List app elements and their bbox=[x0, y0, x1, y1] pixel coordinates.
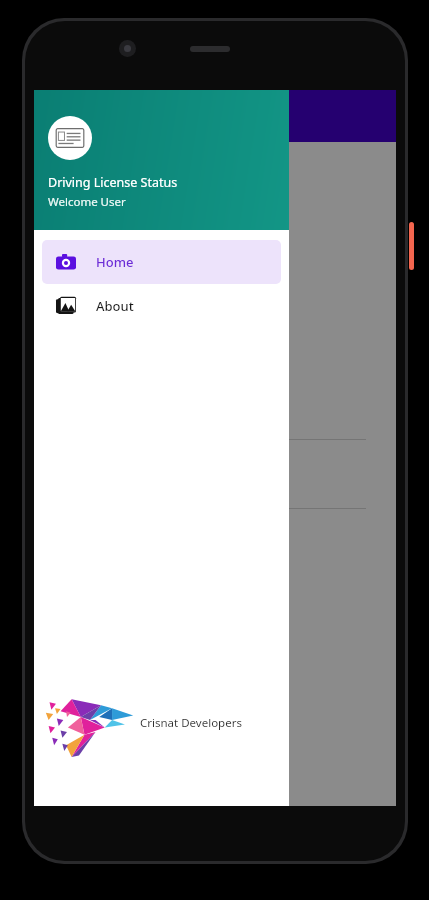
staticText: Crisnat Developers bbox=[140, 715, 242, 731]
staticText: Home bbox=[96, 253, 134, 271]
other: Home bbox=[56, 252, 76, 272]
staticText: About bbox=[96, 297, 134, 315]
staticText: Welcome User bbox=[48, 194, 126, 210]
staticText: Driving License Status bbox=[48, 174, 178, 191]
staticText: Driving License Status Checkers bbox=[56, 230, 250, 248]
other: About bbox=[56, 296, 76, 316]
button[interactable]: Home bbox=[42, 240, 281, 284]
button[interactable]: About bbox=[42, 284, 281, 328]
